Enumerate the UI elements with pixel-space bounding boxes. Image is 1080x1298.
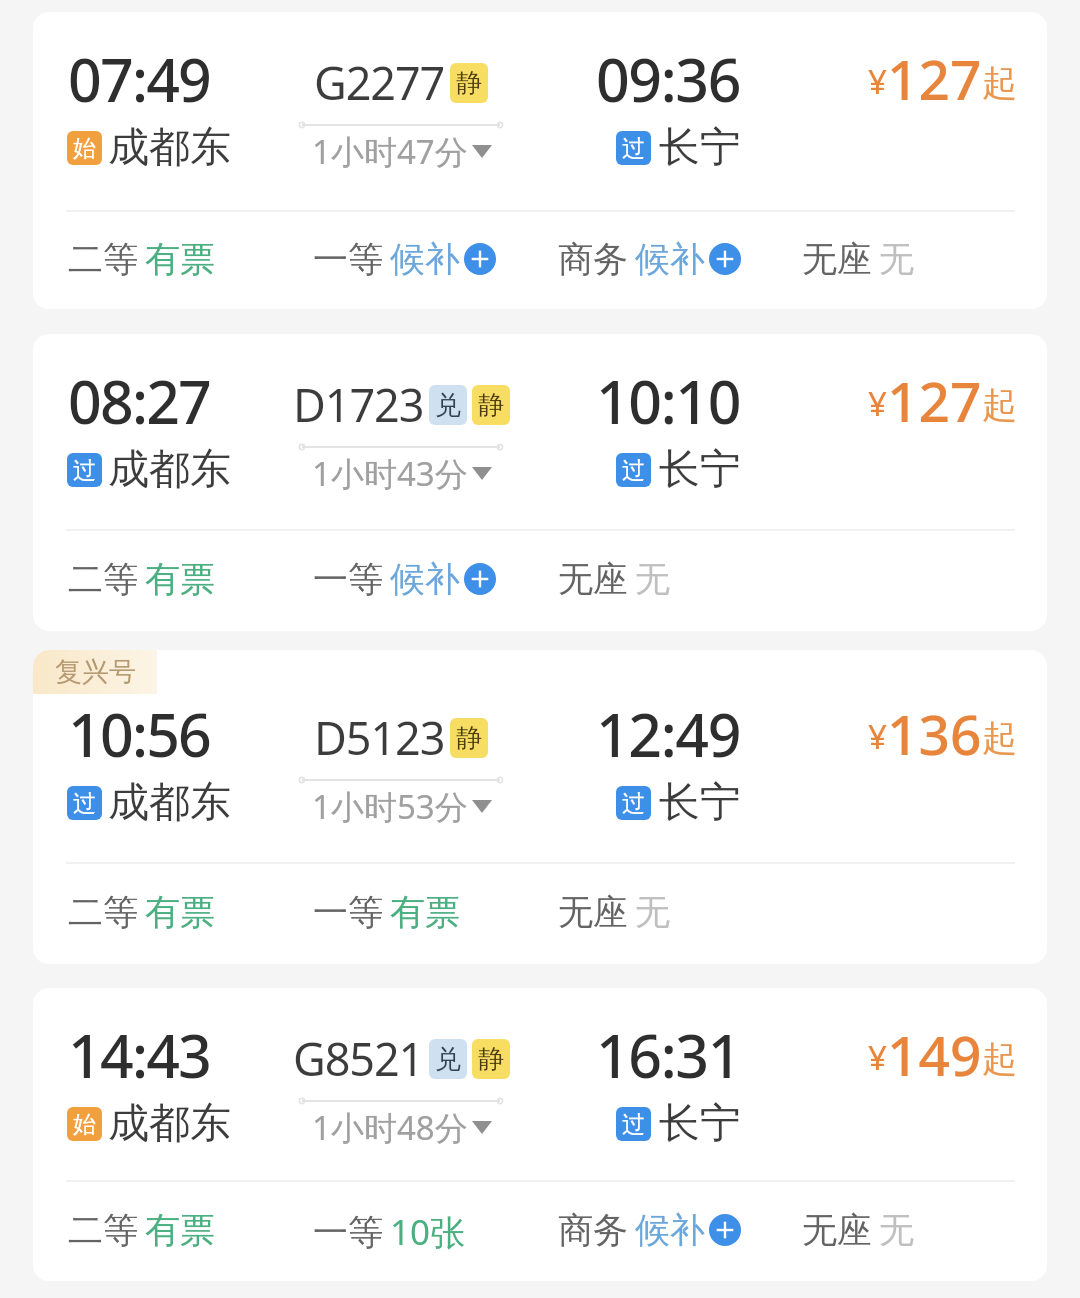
staticText: 商务 [558, 1208, 628, 1252]
staticText: 过 [73, 456, 96, 485]
staticText: 过 [622, 789, 645, 818]
staticText: 二等 [68, 890, 138, 934]
staticText: 1小时43分 [312, 451, 468, 496]
staticText: 过 [622, 456, 645, 485]
staticText: 长宁 [659, 1098, 741, 1150]
staticText: 无座 [558, 557, 628, 601]
staticText: ¥ [868, 59, 887, 104]
staticText: 1小时48分 [312, 1105, 468, 1150]
staticText: 成都东 [108, 777, 231, 829]
staticText: 无座 [558, 890, 628, 934]
staticText: 成都东 [108, 1098, 231, 1150]
staticText: ¥ [868, 381, 887, 426]
button[interactable]: 一等 [313, 1208, 466, 1256]
button[interactable]: 二等 [68, 890, 215, 934]
button[interactable]: 一等 [313, 237, 496, 281]
staticText: 长宁 [659, 122, 741, 174]
staticText: 候补 [390, 557, 460, 601]
staticText: ¥ [868, 714, 887, 759]
staticText: 候补 [635, 237, 705, 281]
button[interactable]: 无座 [558, 557, 670, 601]
staticText: 一等 [313, 557, 383, 601]
staticText: 136 [887, 696, 982, 771]
staticText: 无座 [802, 237, 872, 281]
staticText: 14:43 [68, 1015, 211, 1095]
staticText: 兑 [435, 1043, 461, 1076]
button[interactable]: 08:27 [33, 334, 1047, 631]
staticText: 16:31 [596, 1015, 741, 1095]
staticText: 有票 [145, 1208, 215, 1252]
staticText: 始 [73, 134, 96, 163]
staticText: 127 [887, 41, 982, 116]
staticText: 10:10 [596, 361, 741, 441]
button[interactable]: 无座 [802, 1208, 914, 1252]
staticText: 商务 [558, 237, 628, 281]
other: 展开详情 [472, 800, 492, 813]
staticText: 无 [635, 890, 670, 934]
staticText: 静 [478, 389, 504, 422]
staticText: 无 [879, 1208, 914, 1252]
staticText: 127 [887, 363, 982, 438]
staticText: 起 [982, 61, 1017, 105]
button[interactable]: 1小时47分 [312, 129, 492, 174]
staticText: 起 [982, 1037, 1017, 1081]
staticText: D5123 [314, 707, 445, 768]
staticText: 07:49 [68, 39, 211, 119]
staticText: 二等 [68, 557, 138, 601]
button[interactable]: 1小时48分 [312, 1105, 492, 1150]
button[interactable]: 商务 [558, 1208, 741, 1252]
staticText: G8521 [293, 1028, 424, 1089]
staticText: 起 [982, 716, 1017, 760]
button[interactable]: 无座 [802, 237, 914, 281]
staticText: 09:36 [596, 39, 741, 119]
staticText: 一等 [313, 890, 383, 934]
staticText: 过 [622, 1110, 645, 1139]
staticText: 过 [622, 134, 645, 163]
staticText: 一等 [313, 237, 383, 281]
staticText: 长宁 [659, 444, 741, 496]
staticText: 复兴号 [55, 655, 136, 689]
staticText: D1723 [293, 374, 424, 435]
staticText: 始 [73, 1110, 96, 1139]
button[interactable]: 一等 [313, 557, 496, 601]
button[interactable]: 07:49 [33, 12, 1047, 309]
staticText: 有票 [390, 890, 460, 934]
staticText: 1小时47分 [312, 129, 468, 174]
button[interactable]: 二等 [68, 1208, 215, 1252]
staticText: G2277 [314, 52, 445, 113]
staticText: 静 [478, 1043, 504, 1076]
button[interactable]: 14:43 [33, 988, 1047, 1281]
button[interactable]: 复兴号 [33, 650, 1047, 964]
button[interactable]: 二等 [68, 557, 215, 601]
button[interactable]: 商务 [558, 237, 741, 281]
other: 展开详情 [472, 467, 492, 480]
staticText: 起 [982, 383, 1017, 427]
staticText: 静 [456, 67, 482, 100]
staticText: 有票 [145, 557, 215, 601]
staticText: 成都东 [108, 444, 231, 496]
staticText: 候补 [635, 1208, 705, 1252]
staticText: 10:56 [68, 694, 211, 774]
staticText: 长宁 [659, 777, 741, 829]
button[interactable]: 1小时43分 [312, 451, 492, 496]
staticText: 08:27 [68, 361, 211, 441]
button[interactable]: 一等 [313, 890, 460, 934]
staticText: 无 [879, 237, 914, 281]
staticText: 有票 [145, 890, 215, 934]
button[interactable]: 1小时53分 [312, 784, 492, 829]
staticText: 兑 [435, 389, 461, 422]
staticText: 有票 [145, 237, 215, 281]
button[interactable]: 无座 [558, 890, 670, 934]
other: 展开详情 [472, 1121, 492, 1134]
staticText: 过 [73, 789, 96, 818]
button[interactable]: 二等 [68, 237, 215, 281]
staticText: 静 [456, 722, 482, 755]
staticText: 成都东 [108, 122, 231, 174]
staticText: 10张 [390, 1208, 466, 1256]
staticText: 二等 [68, 1208, 138, 1252]
staticText: 一等 [313, 1210, 383, 1254]
staticText: ¥ [868, 1035, 887, 1080]
staticText: 无座 [802, 1208, 872, 1252]
staticText: 无 [635, 557, 670, 601]
other: 展开详情 [472, 145, 492, 158]
